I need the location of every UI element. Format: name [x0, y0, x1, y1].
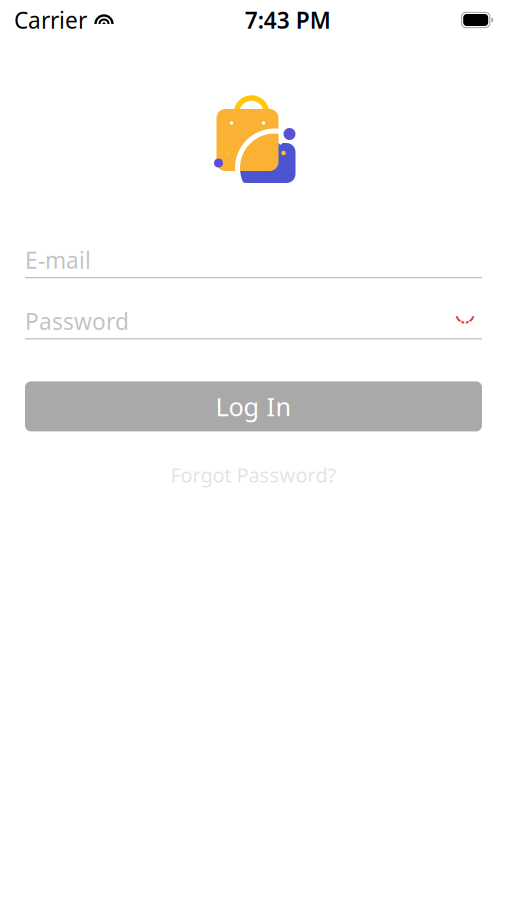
staticText: 7:43 PM	[245, 5, 331, 35]
button[interactable]: Forgot Password?	[0, 455, 507, 494]
staticText: Log In	[215, 390, 291, 423]
staticText: E-mail	[25, 245, 91, 275]
staticText: Password	[25, 306, 129, 336]
button[interactable]: Log In	[25, 381, 482, 431]
staticText: Carrier	[14, 5, 87, 35]
button[interactable]: Show password	[448, 306, 482, 336]
staticText: Forgot Password?	[170, 461, 336, 488]
